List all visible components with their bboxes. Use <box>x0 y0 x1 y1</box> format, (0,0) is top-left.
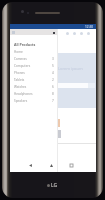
button[interactable]: Close <box>52 31 55 34</box>
staticText: 8 <box>52 92 54 96</box>
button[interactable]: Cameras <box>10 55 57 62</box>
button[interactable]: Phones <box>10 69 57 76</box>
button[interactable]: Headphones <box>10 90 57 97</box>
staticText: 6 <box>52 85 54 89</box>
button[interactable]: Action <box>80 32 83 35</box>
staticText: 2 <box>52 78 54 82</box>
button[interactable]: Back <box>27 162 34 169</box>
button[interactable]: Home <box>48 162 55 169</box>
staticText: All Products <box>14 42 36 47</box>
button[interactable]: Action <box>73 32 76 35</box>
staticText: Headphones <box>14 92 33 96</box>
button[interactable]: Recent apps <box>68 162 75 169</box>
staticText: Computers <box>14 64 31 68</box>
staticText: Tablets <box>14 78 25 82</box>
staticText: LG <box>51 182 58 189</box>
button[interactable]: Home <box>10 48 57 55</box>
staticText: 5 <box>52 64 54 68</box>
staticText: Speakers <box>14 99 28 103</box>
button[interactable]: Watches <box>10 83 57 90</box>
staticText: Cameras <box>14 57 27 61</box>
staticText: Home <box>14 50 23 54</box>
button[interactable]: Search field <box>58 83 89 88</box>
button[interactable]: Speakers <box>10 97 57 104</box>
button[interactable]: Computers <box>10 62 57 69</box>
button[interactable]: Action <box>66 32 69 35</box>
staticText: 12:30 <box>85 25 94 29</box>
staticText: 7 <box>52 99 54 103</box>
button[interactable]: Action <box>87 32 90 35</box>
staticText: Phones <box>14 71 25 75</box>
staticText: 3 <box>52 57 54 61</box>
button[interactable]: Tablets <box>10 76 57 83</box>
staticText: Watches <box>14 85 27 89</box>
staticText: Lorem ipsum <box>58 66 83 71</box>
staticText: 4 <box>52 71 54 75</box>
